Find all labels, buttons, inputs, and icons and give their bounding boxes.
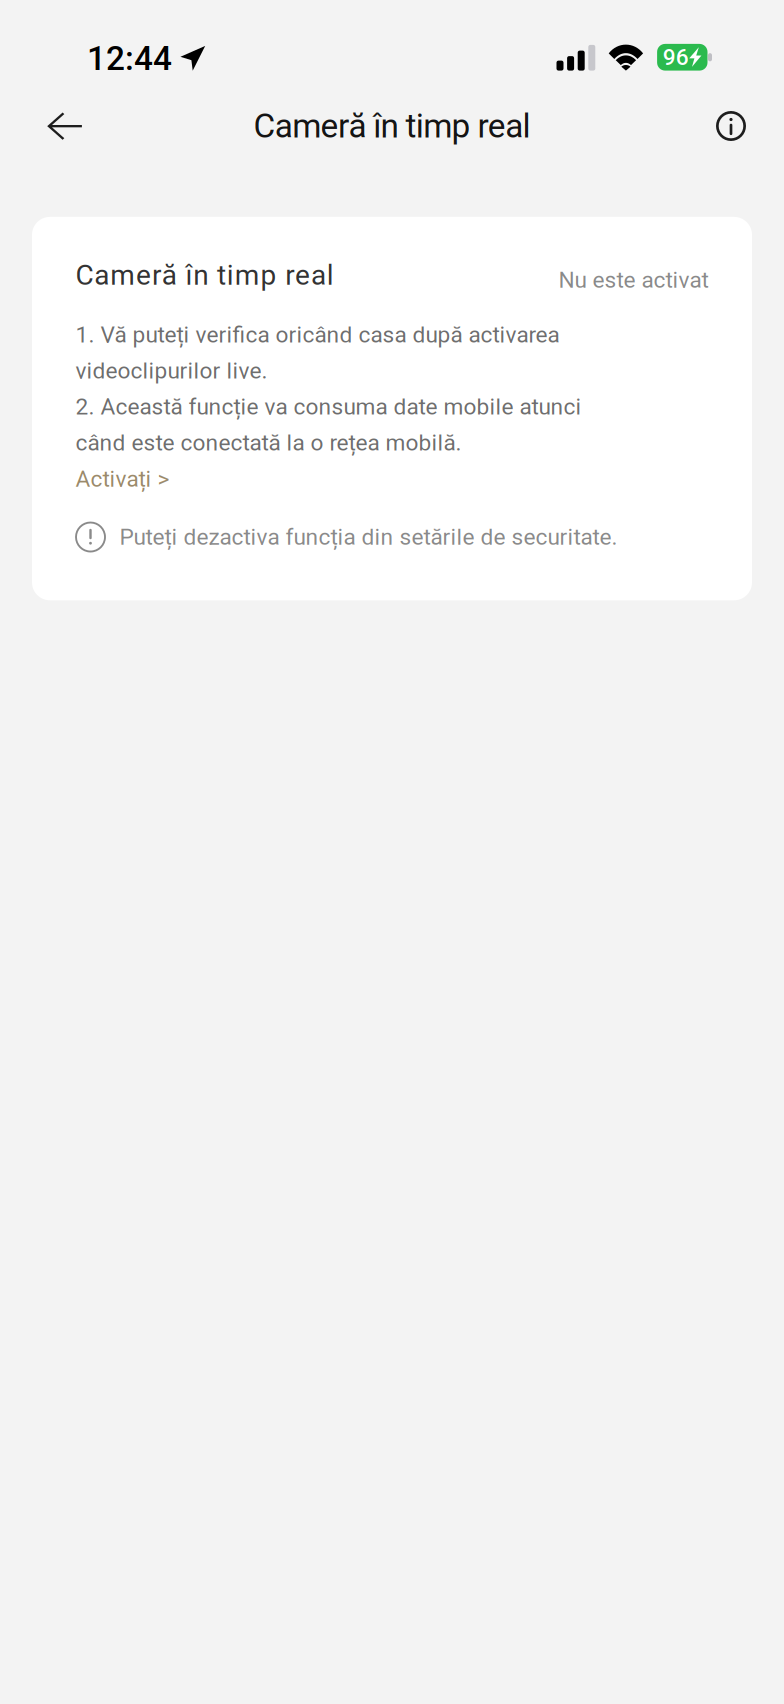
staticText: 12:44 (87, 39, 172, 78)
staticText: când este conectată la o rețea mobilă. (75, 430, 461, 456)
button[interactable]: Information (698, 93, 764, 159)
button[interactable]: Activați > (75, 466, 169, 492)
staticText: Puteți dezactiva funcția din setările de… (119, 524, 617, 550)
button[interactable]: Back (32, 93, 98, 159)
staticText: videoclipurilor live. (75, 357, 267, 384)
staticText: 2. Această funcție va consuma date mobil… (75, 393, 581, 420)
staticText: 96 (663, 44, 689, 71)
staticText: Cameră în timp real (253, 106, 531, 146)
staticText: Cameră în timp real (75, 259, 334, 291)
staticText: Activați > (75, 466, 169, 492)
staticText: 1. Vă puteți verifica oricând casa după … (75, 321, 559, 348)
staticText: Nu este activat (558, 267, 708, 293)
